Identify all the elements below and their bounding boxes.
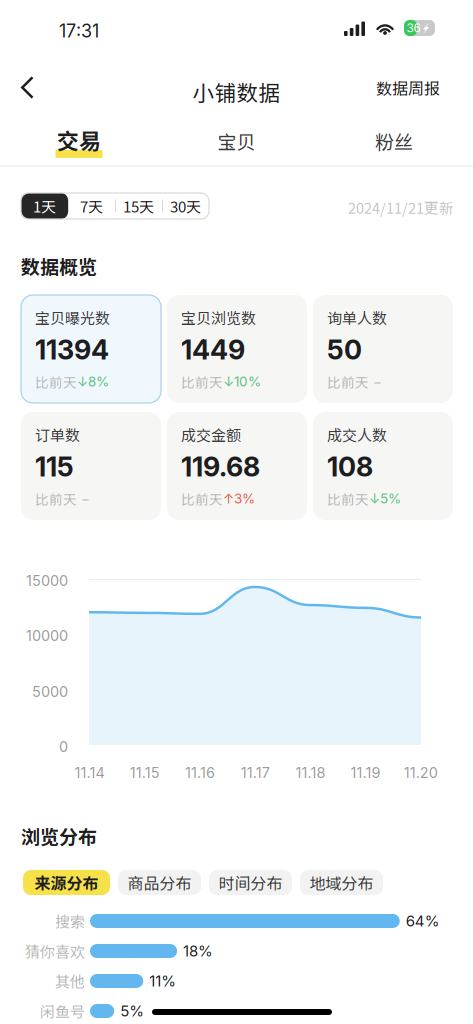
staticText: ↓10% (223, 373, 261, 390)
staticText: 数据概览 (21, 252, 97, 279)
staticText: 其他 (55, 970, 85, 992)
staticText: 来源分布 (34, 871, 98, 894)
button[interactable]: 宝贝 (158, 126, 315, 156)
staticText: 浏览分布 (21, 822, 97, 849)
staticText: 比前天 (35, 372, 77, 391)
staticText: 闲鱼号 (40, 1000, 85, 1022)
button[interactable]: 询单人数 (313, 295, 453, 403)
staticText: 猜你喜欢 (25, 940, 85, 962)
staticText: 108 (327, 450, 373, 483)
staticText: 11394 (35, 333, 109, 366)
button[interactable]: 7天 (68, 193, 115, 219)
button[interactable]: 成交金额 (167, 412, 307, 520)
staticText: 15天 (123, 195, 154, 217)
staticText: 比前天 (181, 372, 223, 391)
staticText: 64% (406, 912, 440, 930)
staticText: 搜索 (55, 910, 85, 932)
staticText: 交易 (57, 124, 101, 156)
staticText: 11.17 (241, 764, 270, 781)
staticText: ↑3% (223, 490, 255, 507)
staticText: 粉丝 (375, 127, 413, 155)
staticText: 11.19 (351, 764, 381, 781)
staticText: 宝贝浏览数 (181, 306, 256, 328)
staticText: 17:31 (59, 20, 99, 42)
staticText: 7天 (80, 195, 103, 217)
staticText: ↓5% (369, 490, 401, 507)
button[interactable]: 宝贝浏览数 (167, 295, 307, 403)
button[interactable]: 宝贝曝光数 (21, 295, 161, 403)
button[interactable]: Back (12, 66, 43, 109)
staticText: 115 (35, 450, 74, 483)
staticText: 成交金额 (181, 423, 241, 445)
staticText: 成交人数 (327, 423, 387, 445)
button[interactable]: 粉丝 (315, 126, 473, 156)
button[interactable]: 1天 (21, 193, 68, 219)
button[interactable]: 地域分布 (300, 870, 383, 895)
button[interactable]: 15天 (115, 193, 162, 219)
button[interactable]: 商品分布 (118, 870, 201, 895)
staticText: 1449 (181, 333, 245, 366)
staticText: 数据周报 (376, 76, 440, 99)
staticText: 时间分布 (218, 871, 282, 894)
staticText: 地域分布 (309, 871, 373, 894)
staticText: 10000 (26, 627, 68, 644)
staticText: 18% (183, 942, 213, 960)
staticText: 1天 (33, 195, 56, 217)
staticText: 询单人数 (327, 306, 387, 328)
button[interactable]: 数据周报 (366, 68, 450, 107)
staticText: 比前天 (327, 489, 369, 508)
staticText: 5% (120, 1002, 144, 1020)
button[interactable]: 订单数 (21, 412, 161, 520)
staticText: 30天 (170, 195, 201, 217)
button[interactable]: 时间分布 (209, 870, 292, 895)
staticText: 11.18 (295, 764, 325, 781)
staticText: 5000 (32, 683, 68, 700)
staticText: 比前天 (35, 489, 77, 508)
staticText: 小铺数据 (192, 76, 280, 107)
staticText: 50 (327, 333, 362, 366)
staticText: 36 (406, 21, 420, 35)
staticText: 11.20 (404, 764, 438, 781)
staticText: 订单数 (35, 423, 80, 445)
staticText: 宝贝曝光数 (35, 306, 110, 328)
staticText: 11.16 (185, 764, 215, 781)
staticText: 11.15 (130, 764, 160, 781)
button[interactable]: 交易 (0, 126, 158, 156)
button[interactable]: 30天 (162, 193, 209, 219)
staticText: 比前天 (327, 372, 369, 391)
staticText: − (77, 490, 90, 507)
staticText: 0 (59, 738, 68, 755)
button[interactable]: 成交人数 (313, 412, 453, 520)
staticText: 119.68 (181, 450, 260, 483)
staticText: 11.14 (75, 764, 105, 781)
staticText: 11% (149, 972, 176, 990)
button[interactable]: 来源分布 (23, 870, 110, 895)
staticText: 宝贝 (217, 127, 255, 155)
staticText: − (369, 373, 382, 390)
staticText: 15000 (26, 572, 68, 589)
staticText: ↓8% (77, 373, 109, 390)
staticText: 比前天 (181, 489, 223, 508)
staticText: 2024/11/21更新 (348, 197, 454, 218)
staticText: 商品分布 (127, 871, 191, 894)
